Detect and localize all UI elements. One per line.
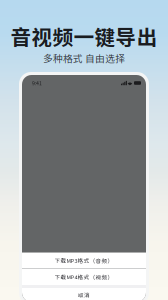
staticText: 多种格式 自由选择 bbox=[43, 51, 125, 65]
staticText: 9:41 bbox=[32, 79, 42, 87]
staticText: 取消 bbox=[78, 291, 90, 299]
staticText: 下载MP4格式（视频） bbox=[54, 273, 113, 281]
button[interactable]: 取消 bbox=[22, 288, 146, 300]
button[interactable]: 下载MP4格式（视频） bbox=[22, 269, 146, 285]
staticText: 下载MP3格式（音频） bbox=[54, 256, 113, 264]
button[interactable]: 下载MP3格式（音频） bbox=[22, 252, 146, 268]
staticText: 音视频一键导出 bbox=[10, 21, 157, 51]
